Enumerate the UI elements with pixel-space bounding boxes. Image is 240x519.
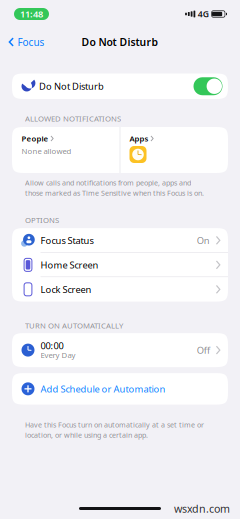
staticText: Add Schedule or Automation (40, 383, 165, 395)
staticText: Allow calls and notifications from peopl… (25, 178, 191, 187)
button[interactable]: Apps (120, 127, 228, 173)
staticText: location, or while using a certain app. (25, 430, 148, 440)
button[interactable]: Focus Status (12, 228, 228, 253)
staticText: 11:48 (20, 8, 43, 20)
staticText: None allowed (21, 146, 71, 156)
staticText: Focus (17, 35, 44, 49)
button[interactable]: People (12, 127, 120, 173)
button[interactable]: Home Screen (12, 253, 228, 277)
button[interactable]: Add Schedule or Automation (12, 373, 228, 405)
staticText: People (21, 133, 48, 144)
staticText: Focus Status (40, 234, 93, 247)
staticText: On (197, 234, 210, 247)
staticText: Do Not Disturb (39, 80, 104, 92)
button[interactable]: Lock Screen (12, 277, 228, 302)
button[interactable]: Focus (0, 30, 52, 54)
staticText: ALLOWED NOTIFICATIONS (25, 113, 121, 124)
staticText: Every Day (40, 350, 75, 360)
staticText: OPTIONS (25, 215, 59, 225)
staticText: Lock Screen (40, 283, 91, 296)
staticText: 4G (198, 8, 209, 20)
staticText: TURN ON AUTOMATICALLY (25, 320, 123, 331)
staticText: Have this Focus turn on automatically at… (25, 420, 204, 429)
staticText: Off (197, 344, 210, 356)
staticText: Home Screen (40, 259, 98, 271)
button[interactable]: 00:00 (12, 333, 228, 367)
staticText: those marked as Time Sensitive when this… (25, 188, 204, 198)
staticText: Apps (129, 133, 148, 144)
button[interactable]: Do Not Disturb toggle (193, 77, 222, 95)
staticText: 00:00 (40, 339, 63, 352)
staticText: wsxdn.com (174, 501, 230, 516)
staticText: Do Not Disturb (81, 35, 158, 49)
